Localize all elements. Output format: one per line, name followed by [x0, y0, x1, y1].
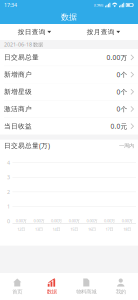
button[interactable]: 新增星级 — [0, 83, 138, 100]
staticText: 0 — [7, 217, 10, 225]
staticText: 日交易总量 — [4, 53, 39, 61]
button[interactable]: 首页 — [0, 273, 34, 300]
staticText: 2021-06-18 数据 — [4, 41, 43, 48]
staticText: 0.00万 — [104, 218, 115, 223]
staticText: 13日 — [35, 226, 43, 232]
staticText: 一周内 — [119, 142, 134, 149]
staticText: 激活商户 — [4, 105, 32, 113]
staticText: 按月查询 — [87, 28, 115, 36]
staticText: 0.00万 — [122, 218, 133, 223]
staticText: 数据 — [61, 12, 77, 22]
staticText: 16日 — [88, 226, 96, 232]
staticText: 17:34 — [4, 1, 17, 9]
staticText: 0个 — [116, 105, 127, 113]
staticText: 17日 — [105, 226, 113, 232]
button[interactable]: 物料商城 — [69, 273, 103, 300]
button[interactable]: 激活商户 — [0, 101, 138, 117]
staticText: 我的 — [116, 288, 126, 295]
staticText: 首页 — [12, 288, 22, 295]
staticText: 数据 — [47, 288, 57, 295]
staticText: 新增商户 — [4, 70, 32, 79]
button[interactable]: 按月查询 — [69, 24, 138, 40]
staticText: 0.00万 — [86, 218, 97, 223]
staticText: 0.00万 — [51, 218, 62, 223]
staticText: 新增星级 — [4, 88, 32, 96]
staticText: 2 — [7, 188, 10, 195]
staticText: 日交易总量(万) — [4, 141, 50, 150]
staticText: 0.0元 — [110, 122, 127, 131]
button[interactable]: 按日查询 — [0, 24, 69, 40]
staticText: 0.00万 — [33, 218, 44, 223]
staticText: 1 — [7, 203, 10, 210]
staticText: 0.9K/s — [94, 2, 104, 8]
staticText: 3 — [7, 174, 10, 181]
button[interactable]: 我的 — [103, 273, 138, 300]
staticText: 当日收益 — [4, 122, 32, 130]
staticText: 0.00万 — [16, 218, 27, 223]
button[interactable]: 日交易总量 — [0, 49, 138, 66]
staticText: 15日 — [70, 226, 78, 232]
button[interactable]: 新增商户 — [0, 66, 138, 83]
staticText: 14日 — [53, 226, 61, 232]
staticText: 按日查询 — [18, 28, 46, 36]
staticText: 0.00万 — [69, 218, 80, 223]
staticText: 0个 — [116, 87, 127, 96]
staticText: 物料商城 — [76, 288, 96, 295]
staticText: 0.00万 — [106, 53, 127, 62]
button[interactable]: 当日收益 — [0, 118, 138, 135]
staticText: 0个 — [116, 70, 127, 79]
staticText: 4 — [7, 159, 10, 166]
staticText: 18日 — [123, 226, 131, 232]
staticText: 12日 — [17, 226, 25, 232]
button[interactable]: 数据 — [34, 273, 69, 300]
